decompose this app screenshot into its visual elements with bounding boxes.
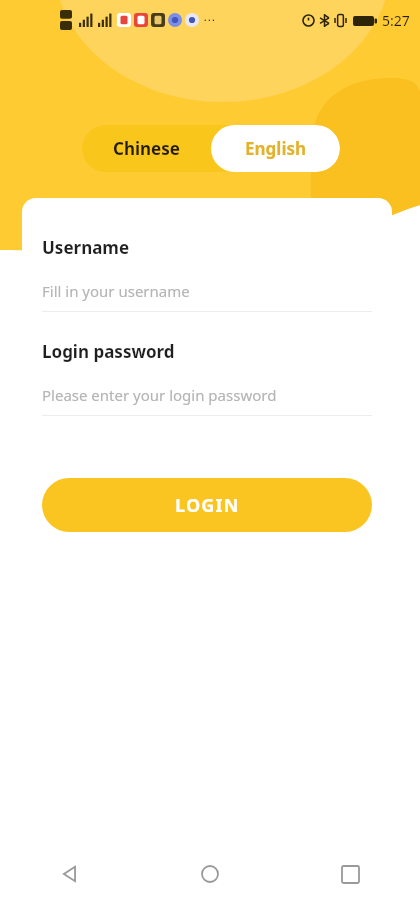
staticText: Login password (42, 340, 175, 363)
button[interactable]: LOGIN (42, 478, 372, 532)
staticText: Please enter your login password (42, 385, 277, 405)
button[interactable]: Username (22, 236, 392, 312)
staticText: Username (42, 236, 130, 259)
staticText: ⋯ (203, 13, 215, 27)
staticText: Fill in your username (42, 281, 190, 301)
button[interactable]: Recent apps (280, 848, 420, 900)
button[interactable]: Chinese (82, 125, 211, 172)
staticText: LOGIN (175, 493, 240, 518)
staticText: English (245, 137, 307, 160)
button[interactable]: Back (0, 848, 140, 900)
staticText: Chinese (113, 137, 180, 160)
button[interactable]: English (211, 125, 340, 172)
button[interactable]: Login password (22, 340, 392, 416)
staticText: 5:27 (382, 11, 410, 30)
button[interactable]: Home (140, 848, 280, 900)
